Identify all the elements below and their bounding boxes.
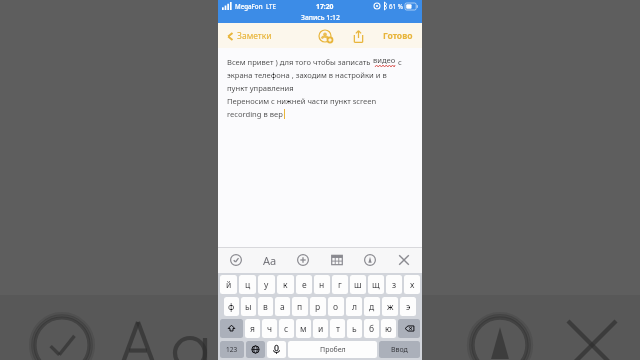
staticText: 123 [226,345,238,354]
staticText: видео [373,55,396,65]
button[interactable]: Shift [220,319,243,338]
staticText: к [283,279,288,291]
staticText: Запись 1:12 [301,13,340,22]
staticText: 17:20 [316,2,334,11]
staticText: ц [245,279,251,291]
button[interactable]: п [292,297,308,316]
button[interactable]: у [258,275,275,294]
staticText: ч [267,323,273,335]
button[interactable]: ц [239,275,256,294]
button[interactable]: Aa [260,250,280,271]
staticText: Ввод [391,345,408,355]
staticText: ь [352,323,357,335]
button[interactable]: з [386,275,402,294]
staticText: в [263,301,268,313]
button[interactable]: ж [382,297,398,316]
staticText: а [280,301,285,313]
button[interactable]: э [400,297,416,316]
button[interactable]: м [296,319,311,338]
staticText: н [319,279,325,291]
staticText: LTE [266,2,276,10]
staticText: е [302,279,307,291]
button[interactable]: Заметки [224,28,274,44]
staticText: э [406,301,411,313]
staticText: ы [245,301,252,313]
button[interactable]: г [332,275,348,294]
button[interactable]: Диктовка [267,341,286,358]
staticText: т [336,323,340,335]
staticText: й [226,279,232,291]
staticText: ж [387,301,394,313]
staticText: Готово [383,30,413,42]
staticText: и [318,323,324,335]
button[interactable]: Рисование [360,250,380,270]
button[interactable]: Поделиться [348,26,368,46]
staticText: Переносим с нижней части пункт screen [227,96,377,106]
staticText: м [300,323,307,335]
staticText: Всем привет ) для того чтобы записать [227,57,373,67]
button[interactable]: д [364,297,380,316]
staticText: о [333,301,339,313]
button[interactable]: ш [350,275,366,294]
button[interactable]: с [279,319,294,338]
button[interactable]: ь [347,319,362,338]
staticText: recording в вер [227,109,283,119]
staticText: п [297,301,303,313]
staticText: экрана телефона , заходим в настройки и … [227,70,387,80]
button[interactable]: р [310,297,326,316]
button[interactable]: Добавить участника [316,26,336,46]
button[interactable]: щ [368,275,384,294]
staticText: с [284,323,289,335]
button[interactable]: 123 [220,341,244,358]
button[interactable]: в [258,297,273,316]
staticText: Пробел [320,345,346,355]
button[interactable]: ы [241,297,256,316]
button[interactable]: а [275,297,290,316]
staticText: 61 % [389,2,403,10]
button[interactable]: ч [262,319,277,338]
button[interactable]: к [277,275,294,294]
staticText: ш [354,279,362,291]
button[interactable]: х [404,275,420,294]
staticText: с [396,57,402,67]
staticText: д [369,301,375,313]
button[interactable]: Закрыть клавиатуру [394,250,414,270]
button[interactable]: Готово, отметить [226,250,246,270]
staticText: я [250,323,255,335]
button[interactable]: й [220,275,237,294]
button[interactable]: ю [381,319,396,338]
button[interactable]: Готово [380,27,416,45]
staticText: пункт управления [227,83,294,93]
button[interactable]: Таблица [327,250,347,270]
staticText: л [352,301,357,313]
staticText: Заметки [237,30,272,42]
staticText: ю [385,323,392,335]
button[interactable]: л [346,297,362,316]
button[interactable]: Пробел [288,341,377,358]
staticText: р [315,301,321,313]
staticText: MegaFon [235,2,263,10]
button[interactable]: Ввод [379,341,420,358]
staticText: г [338,279,342,291]
button[interactable]: т [330,319,345,338]
button[interactable]: н [314,275,330,294]
staticText: ф [228,301,235,313]
button[interactable]: Добавить [293,250,313,270]
staticText: щ [372,279,380,291]
staticText: х [410,279,415,291]
staticText: б [369,323,375,335]
staticText: Aa [263,253,277,268]
button[interactable]: и [313,319,328,338]
button[interactable]: я [245,319,260,338]
button[interactable]: Сменить язык [246,341,265,358]
button[interactable]: Удалить [398,319,420,338]
button[interactable]: о [328,297,344,316]
button[interactable]: е [296,275,312,294]
button[interactable]: ф [224,297,239,316]
button[interactable]: б [364,319,379,338]
staticText: у [264,279,269,291]
staticText: з [392,279,397,291]
